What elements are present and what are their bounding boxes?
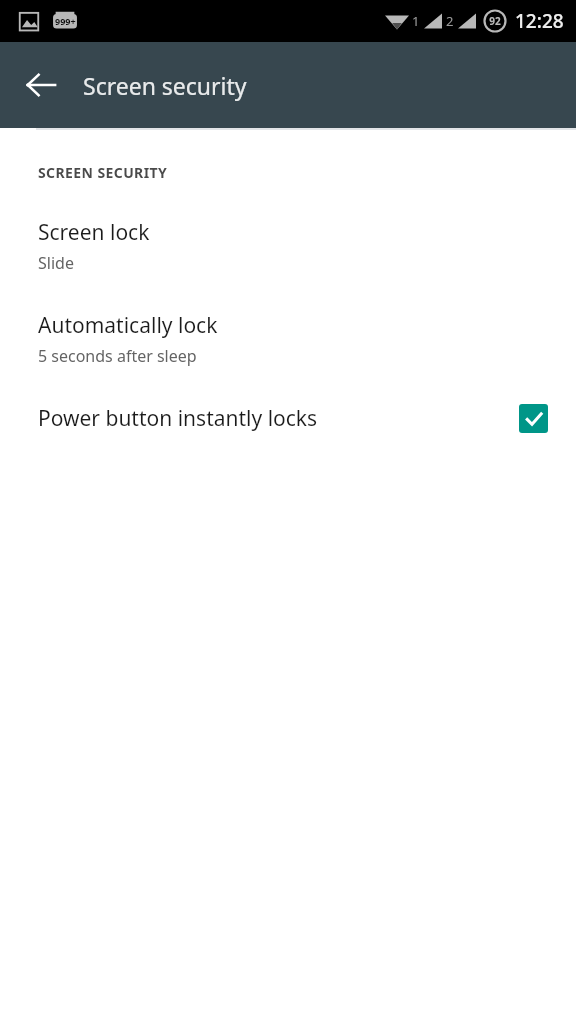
staticText: Slide xyxy=(38,252,74,274)
button[interactable]: Automatically lock xyxy=(0,311,576,367)
button[interactable]: Back xyxy=(14,58,68,112)
staticText: SCREEN SECURITY xyxy=(38,163,168,182)
staticText: 2 xyxy=(446,12,454,30)
button[interactable]: Screen lock xyxy=(0,218,576,274)
staticText: Screen security xyxy=(83,70,247,101)
staticText: 999+ xyxy=(55,15,76,27)
staticText: Automatically lock xyxy=(38,311,218,340)
staticText: 1 xyxy=(412,12,420,30)
staticText: Power button instantly locks xyxy=(38,404,519,433)
staticText: Screen lock xyxy=(38,218,150,247)
staticText: 12:28 xyxy=(515,8,564,34)
button[interactable]: Power button instantly locks xyxy=(0,404,576,433)
staticText: 92 xyxy=(489,14,501,28)
staticText: 5 seconds after sleep xyxy=(38,345,197,367)
